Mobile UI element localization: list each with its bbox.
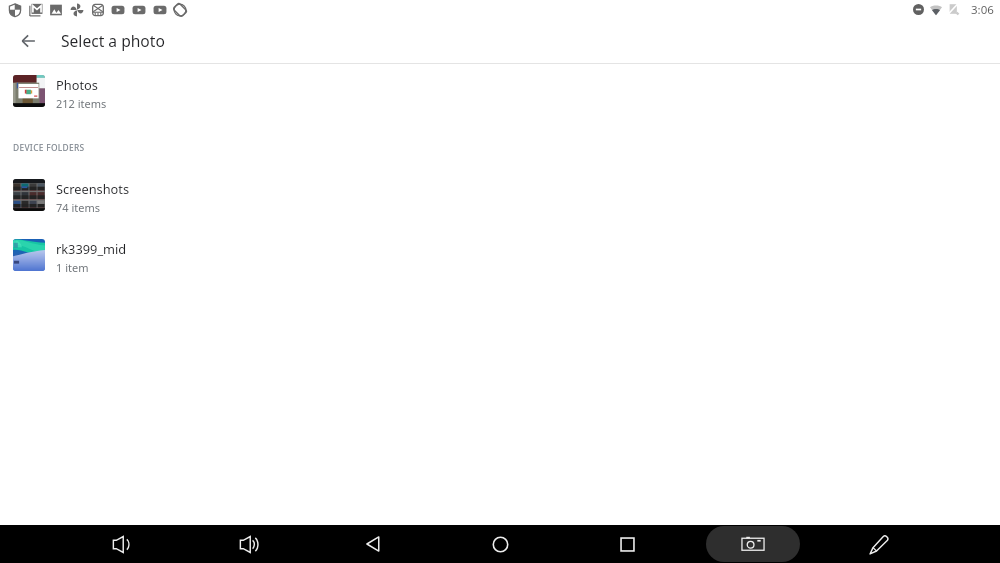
button[interactable]: Back (10, 22, 47, 59)
staticText: 1 item (56, 260, 89, 275)
staticText: Photos (56, 76, 98, 93)
button[interactable]: Recents (608, 525, 646, 563)
staticText: 3:06 (971, 2, 994, 18)
staticText: 212 items (56, 96, 107, 111)
button[interactable]: Edit (860, 525, 898, 563)
button[interactable]: Home (481, 525, 519, 563)
staticText: rk3399_mid (56, 240, 127, 257)
button[interactable]: Photos (0, 69, 1000, 113)
button[interactable]: Camera (706, 526, 800, 562)
button[interactable]: Volume up (228, 525, 266, 563)
staticText: 74 items (56, 200, 101, 215)
staticText: DEVICE FOLDERS (13, 142, 85, 153)
button[interactable]: Back (354, 525, 392, 563)
staticText: Screenshots (56, 180, 130, 197)
button[interactable]: Screenshots (0, 173, 1000, 217)
staticText: Select a photo (61, 30, 165, 51)
button[interactable]: rk3399_mid (0, 233, 1000, 277)
button[interactable]: Volume down (101, 525, 139, 563)
